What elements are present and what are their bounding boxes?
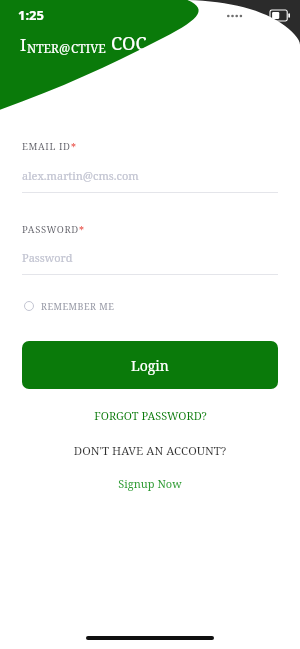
button[interactable]: FORGOT PASSWORD? [22,408,278,423]
staticText: REMEMBER ME [41,300,115,312]
button[interactable]: REMEMBER ME [22,296,117,316]
button[interactable]: Password [22,250,278,265]
staticText: I [20,33,27,56]
staticText: CTIVE [71,40,106,56]
staticText: Login [131,356,169,375]
button[interactable]: Login [22,341,278,389]
staticText: * [79,223,84,237]
staticText: PASSWORD [22,223,79,236]
button[interactable]: alex.martin@cms.com [22,168,278,183]
staticText: DON'T HAVE AN ACCOUNT? [22,443,278,459]
staticText: COC [111,31,147,56]
staticText: Signup Now [118,476,182,491]
staticText: Password [22,250,73,265]
staticText: 1:25 [18,6,44,24]
staticText: NTER [27,40,59,56]
staticText: @ [59,40,71,56]
button[interactable]: Signup Now [22,476,278,491]
staticText: * [71,140,76,154]
staticText: EMAIL ID [22,140,71,153]
staticText: alex.martin@cms.com [22,168,139,183]
staticText: FORGOT PASSWORD? [94,408,207,423]
